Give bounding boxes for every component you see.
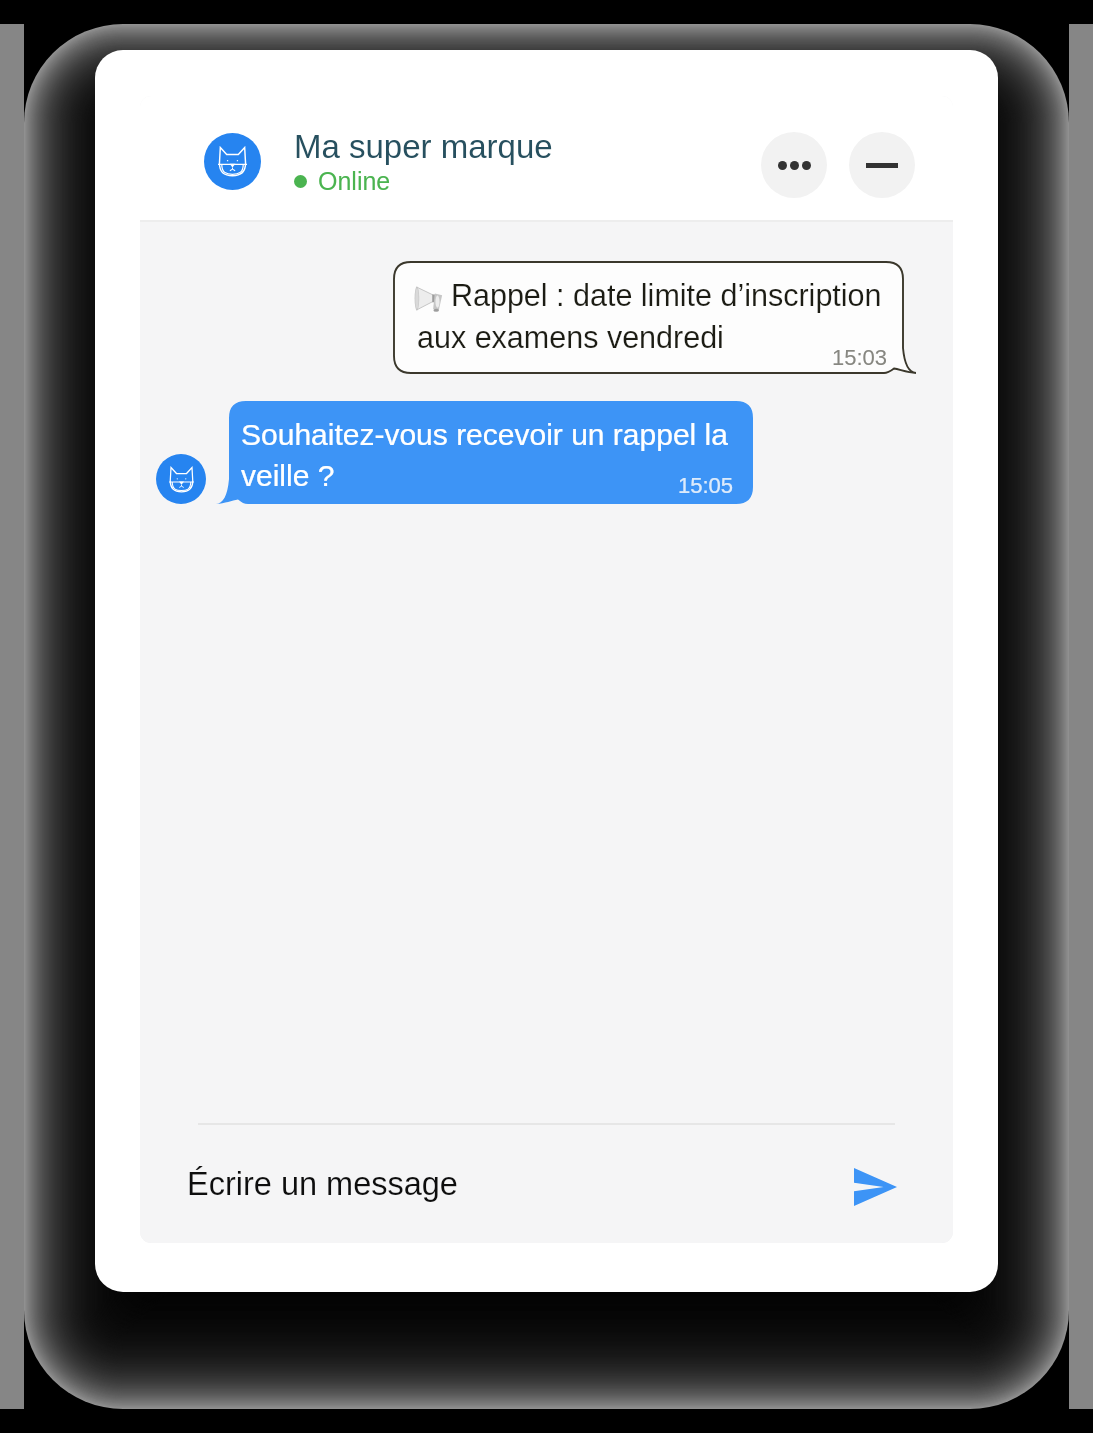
staticText: Online (318, 167, 391, 195)
staticText: Souhaitez-vous recevoir un rappel la vei… (241, 418, 728, 492)
staticText: 15:03 (417, 345, 887, 365)
button[interactable]: Minimize (849, 132, 915, 198)
staticText: 15:05 (241, 473, 733, 493)
button[interactable]: Send message (840, 1149, 910, 1219)
staticText: Écrire un message (187, 1166, 458, 1202)
staticText: Rappel : date limite d’inscription aux e… (417, 278, 882, 354)
staticText: Ma super marque (294, 128, 553, 165)
button[interactable]: More options (761, 132, 827, 198)
